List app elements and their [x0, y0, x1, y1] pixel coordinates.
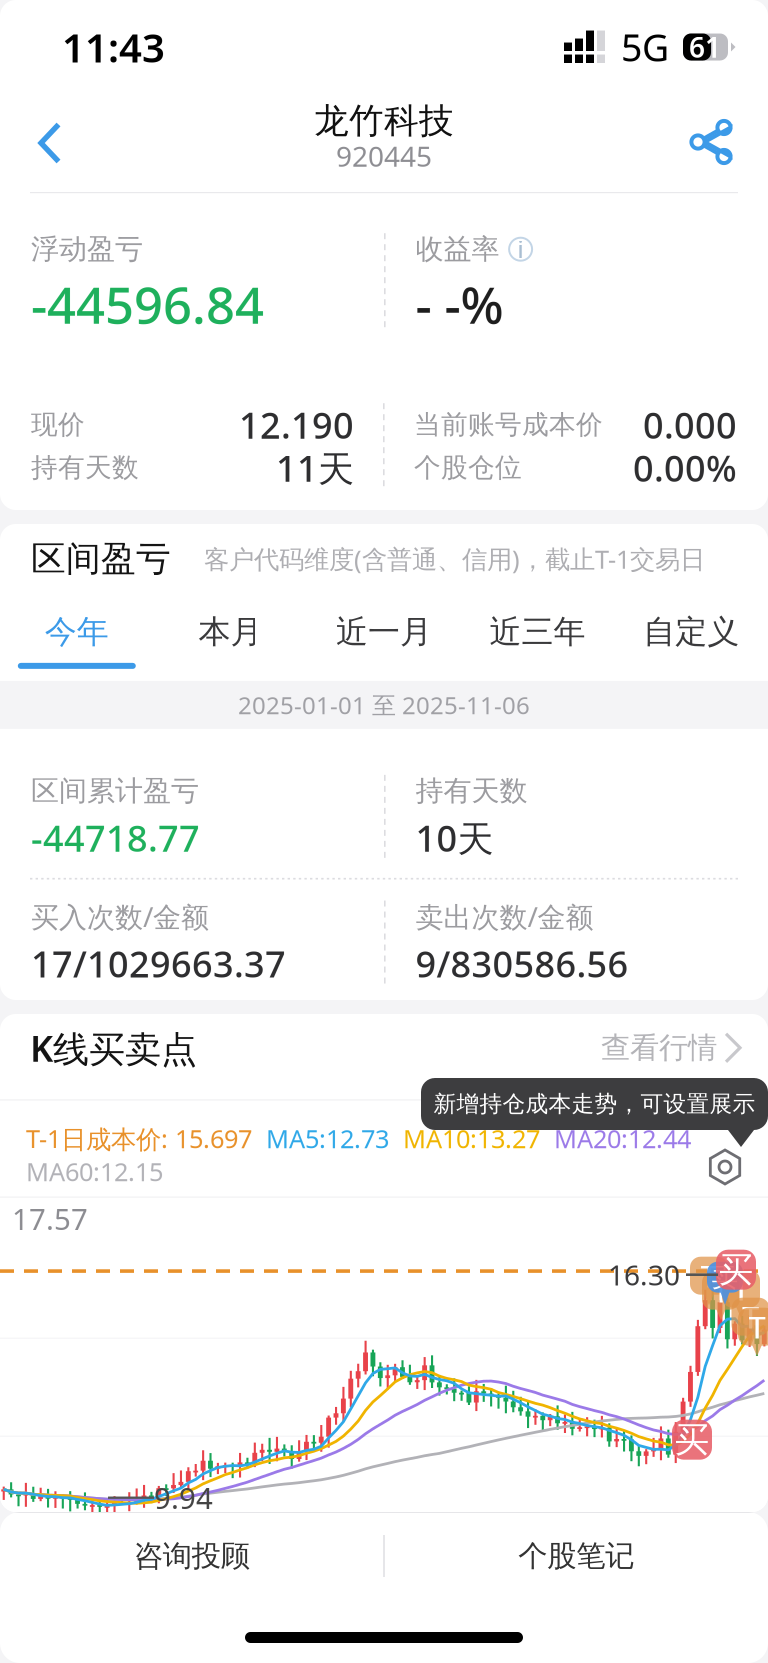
staticText: T-1日成本价: 15.697 [26, 1122, 252, 1155]
staticText: 个股仓位 [414, 451, 522, 484]
button[interactable]: 个股笔记 [385, 1513, 768, 1599]
staticText: 买入次数/金额 [31, 898, 209, 935]
staticText: 查看行情 [601, 1030, 717, 1066]
staticText: 当前账号成本价 [414, 408, 603, 441]
button[interactable]: 近三年 [461, 599, 614, 681]
button[interactable]: Chart settings [698, 1140, 752, 1194]
staticText: 9/830586.56 [416, 940, 629, 987]
staticText: 61 [689, 28, 721, 66]
staticText: T [748, 1306, 765, 1347]
staticText: 2025-01-01 至 2025-11-06 [238, 689, 530, 721]
staticText: MA60:12.15 [26, 1155, 163, 1188]
button[interactable]: 咨询投顾 [0, 1513, 383, 1599]
staticText: 个股笔记 [518, 1538, 634, 1574]
staticText: 9.94 [154, 1478, 213, 1517]
button[interactable]: Back [8, 98, 92, 188]
staticText: MA5:12.73 [266, 1122, 389, 1155]
staticText: - -% [416, 271, 504, 338]
staticText: 浮动盈亏 [31, 232, 143, 266]
staticText: 龙竹科技 [314, 100, 454, 142]
staticText: 920445 [336, 137, 432, 175]
staticText: 咨询投顾 [134, 1538, 250, 1574]
staticText: T [732, 1268, 749, 1309]
staticText: 17.57 [12, 1199, 88, 1238]
staticText: 12.190 [239, 401, 354, 449]
staticText: 自定义 [643, 612, 739, 651]
button[interactable]: 本月 [154, 599, 307, 681]
button[interactable]: 今年 [0, 599, 154, 681]
staticText: 17/1029663.37 [31, 940, 286, 987]
staticText: 持有天数 [31, 451, 139, 484]
button[interactable]: 查看行情 [601, 1018, 744, 1078]
staticText: i [518, 234, 524, 264]
staticText: MA10:13.27 [403, 1122, 540, 1155]
staticText: T [742, 1296, 759, 1337]
staticText: 16.30 [608, 1256, 680, 1293]
staticText: 买 [718, 1248, 753, 1291]
staticText: 客户代码维度(含普通、信用)，截止T-1交易日 [204, 542, 705, 576]
staticText: -44596.84 [31, 271, 264, 338]
staticText: MA20:12.44 [554, 1122, 691, 1155]
staticText: 近一月 [336, 612, 432, 651]
staticText: 10天 [416, 814, 494, 862]
staticText: T [700, 1255, 717, 1296]
staticText: 买 [674, 1418, 709, 1461]
staticText: 0.00% [633, 444, 737, 492]
button[interactable]: 自定义 [614, 599, 768, 681]
staticText: 持有天数 [416, 774, 528, 808]
staticText: 区间盈亏 [31, 538, 171, 580]
staticText: 近三年 [490, 612, 586, 651]
staticText: -44718.77 [31, 814, 200, 862]
staticText: 区间累计盈亏 [31, 774, 199, 808]
staticText: K线买卖点 [30, 1024, 197, 1072]
staticText: 5G [621, 22, 669, 72]
staticText: 卖 [711, 1261, 738, 1294]
staticText: 新增持仓成本走势，可设置展示 [433, 1090, 755, 1118]
staticText: 0.000 [643, 401, 737, 449]
button[interactable]: Share [670, 98, 754, 188]
staticText: 现价 [31, 408, 85, 441]
button[interactable]: 近一月 [307, 599, 461, 681]
staticText: 11天 [276, 444, 354, 492]
staticText: 本月 [198, 612, 262, 651]
staticText: 收益率 [416, 232, 500, 266]
staticText: 今年 [45, 612, 109, 651]
staticText: T [712, 1270, 729, 1311]
staticText: 11:43 [62, 20, 165, 73]
staticText: 卖出次数/金额 [416, 898, 594, 935]
